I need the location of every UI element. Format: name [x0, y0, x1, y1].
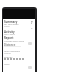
staticText: Steps — [4, 25, 10, 28]
staticText: last 7 days — [4, 33, 15, 36]
staticText: Online — [4, 52, 11, 55]
staticText: for this week — [4, 22, 19, 25]
staticText: Summary — [4, 20, 18, 24]
staticText: More — [4, 63, 10, 66]
staticText: Average pace value — [4, 40, 24, 43]
staticText: Team members — [4, 50, 20, 53]
button[interactable]: Thumbnail — [28, 66, 32, 69]
button[interactable]: Thumbnail — [28, 42, 32, 45]
staticText: Activity — [4, 30, 15, 34]
staticText: Friends — [4, 55, 13, 58]
staticText: 7 — [31, 21, 33, 25]
staticText: Report — [4, 36, 14, 40]
staticText: Distance — [4, 43, 16, 47]
staticText: 4 — [31, 26, 33, 29]
